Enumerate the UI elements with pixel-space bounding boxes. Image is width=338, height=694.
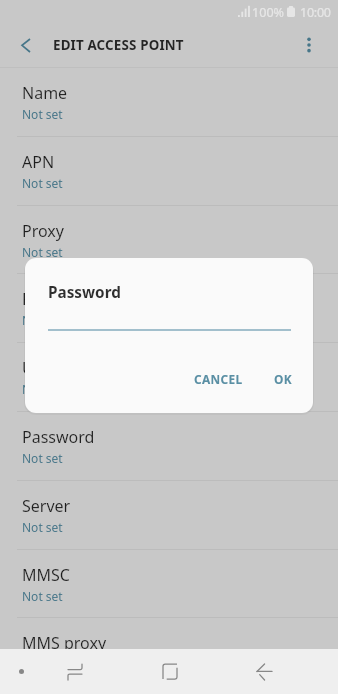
button[interactable]: Hide keyboard	[4, 649, 39, 694]
staticText: APN	[22, 151, 55, 173]
button[interactable]: Proxy	[0, 206, 338, 274]
staticText: Not set	[22, 381, 63, 397]
button[interactable]: Recent apps	[52, 649, 98, 694]
staticText: 10:00	[300, 4, 331, 21]
button[interactable]: Port	[0, 274, 338, 342]
button[interactable]: MMSC	[0, 550, 338, 618]
staticText: Name	[22, 82, 68, 104]
staticText: Password	[48, 282, 121, 303]
staticText: Username	[22, 357, 100, 379]
staticText: Not set	[22, 175, 63, 191]
staticText: MMSC	[22, 564, 70, 586]
staticText: OK	[274, 371, 293, 387]
button[interactable]: Username	[0, 343, 338, 411]
staticText: MMS proxy	[22, 632, 107, 649]
staticText: Not set	[22, 519, 63, 535]
staticText: Server	[22, 495, 71, 517]
button[interactable]: CANCEL	[187, 364, 250, 394]
button[interactable]: APN	[0, 137, 338, 205]
staticText: Password	[22, 426, 95, 448]
staticText: Proxy	[22, 220, 64, 242]
staticText: Not set	[22, 312, 63, 328]
staticText: Not set	[22, 244, 63, 260]
button[interactable]: Server	[0, 481, 338, 549]
button[interactable]: OK	[267, 364, 300, 394]
button[interactable]: Home	[147, 649, 193, 694]
button[interactable]: Password	[0, 412, 338, 480]
button[interactable]: Back	[241, 649, 287, 694]
button[interactable]: Navigate up	[5, 24, 47, 67]
staticText: EDIT ACCESS POINT	[53, 36, 184, 54]
staticText: Not set	[22, 588, 63, 604]
staticText: Port	[22, 288, 54, 310]
staticText: Not set	[22, 450, 63, 466]
button[interactable]: More options	[288, 24, 330, 67]
button[interactable]: MMS proxy	[0, 618, 338, 649]
button[interactable]: Name	[0, 68, 338, 136]
staticText: CANCEL	[194, 371, 243, 387]
staticText: 100%	[252, 4, 285, 21]
staticText: Not set	[22, 106, 63, 122]
